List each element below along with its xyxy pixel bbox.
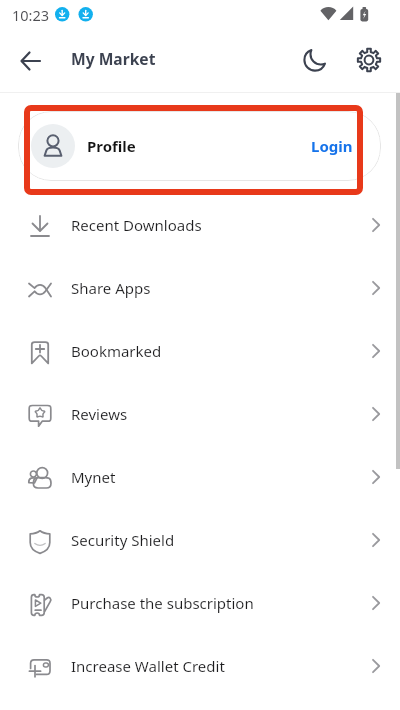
button[interactable]: Profile [18,111,381,181]
button[interactable]: Back [12,42,50,80]
staticText: Recent Downloads [71,215,202,235]
staticText: Increase Wallet Credit [71,656,225,676]
staticText: Reviews [71,404,128,424]
staticText: Share Apps [71,278,151,298]
staticText: Mynet [71,467,116,487]
button[interactable]: Reviews [0,382,400,445]
staticText: Login [311,136,353,156]
button[interactable]: Bookmarked [0,319,400,382]
button[interactable]: Recent Downloads [0,193,400,256]
button[interactable]: Mynet [0,445,400,508]
staticText: Security Shield [71,530,175,550]
button[interactable]: Settings [350,41,388,79]
staticText: My Market [71,48,156,69]
staticText: Purchase the subscription [71,593,254,613]
button[interactable]: Dark mode [296,41,334,79]
staticText: Bookmarked [71,341,162,361]
staticText: 10:23 [12,5,50,25]
button[interactable]: Security Shield [0,508,400,571]
button[interactable]: Purchase the subscription [0,571,400,634]
button[interactable]: Increase Wallet Credit [0,634,400,697]
staticText: Profile [87,136,136,156]
button[interactable]: Share Apps [0,256,400,319]
